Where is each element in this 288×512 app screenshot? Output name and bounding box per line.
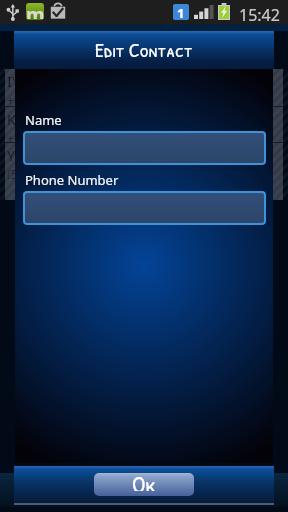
other: Download complete <box>49 3 67 20</box>
staticText: +1 555 0101 <box>7 92 76 107</box>
staticText: 15:42 <box>239 4 280 26</box>
other: Market <box>26 3 44 20</box>
staticText: Edit Contact <box>95 36 193 63</box>
staticText: Yes, see you <box>7 146 87 165</box>
staticText: (555) 0199 <box>7 166 66 179</box>
staticText: +1 555 0123 <box>7 130 76 143</box>
staticText: Name <box>25 111 62 129</box>
staticText: Keep in touch <box>7 110 98 129</box>
button[interactable] <box>23 191 266 225</box>
staticText: Ok <box>132 473 157 491</box>
button[interactable]: I'm on my way <box>5 69 283 200</box>
other: USB connected <box>7 4 20 20</box>
staticText: Phone Number <box>25 171 119 189</box>
staticText: m <box>26 3 44 19</box>
button[interactable]: Ok <box>94 473 194 496</box>
staticText: 1 <box>177 4 185 20</box>
button[interactable] <box>23 131 266 165</box>
staticText: I'm on my way <box>7 72 102 91</box>
